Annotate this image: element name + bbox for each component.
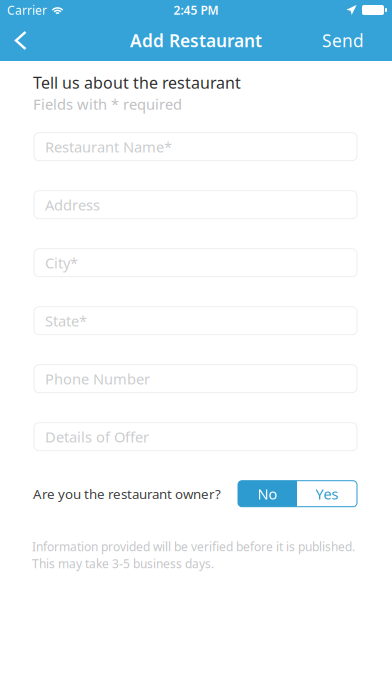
staticText: This may take 3-5 business days. [32,556,214,572]
button[interactable]: Send [322,20,392,61]
staticText: Restaurant Name* [45,137,172,156]
button[interactable]: No [238,481,297,507]
button[interactable]: Back [0,20,70,61]
staticText: Fields with * required [33,94,182,114]
button[interactable]: Details of Offer [34,423,357,451]
staticText: Phone Number [45,369,150,388]
button[interactable]: State* [34,307,357,335]
staticText: Send [322,29,364,52]
staticText: State* [45,311,87,330]
button[interactable]: Phone Number [34,365,357,393]
staticText: Are you the restaurant owner? [33,485,221,503]
staticText: Carrier [7,2,47,18]
staticText: 2:45 PM [173,2,218,18]
staticText: Yes [315,484,338,503]
staticText: Add Restaurant [130,29,262,52]
staticText: Details of Offer [45,427,149,446]
staticText: Information provided will be verified be… [32,539,355,555]
staticText: Address [45,195,100,214]
button[interactable]: City* [34,249,357,277]
staticText: Tell us about the restaurant [33,72,241,93]
button[interactable]: Yes [297,481,357,507]
staticText: No [257,484,277,503]
staticText: City* [45,253,78,272]
button[interactable]: Restaurant Name* [34,133,357,161]
button[interactable]: Address [34,191,357,219]
